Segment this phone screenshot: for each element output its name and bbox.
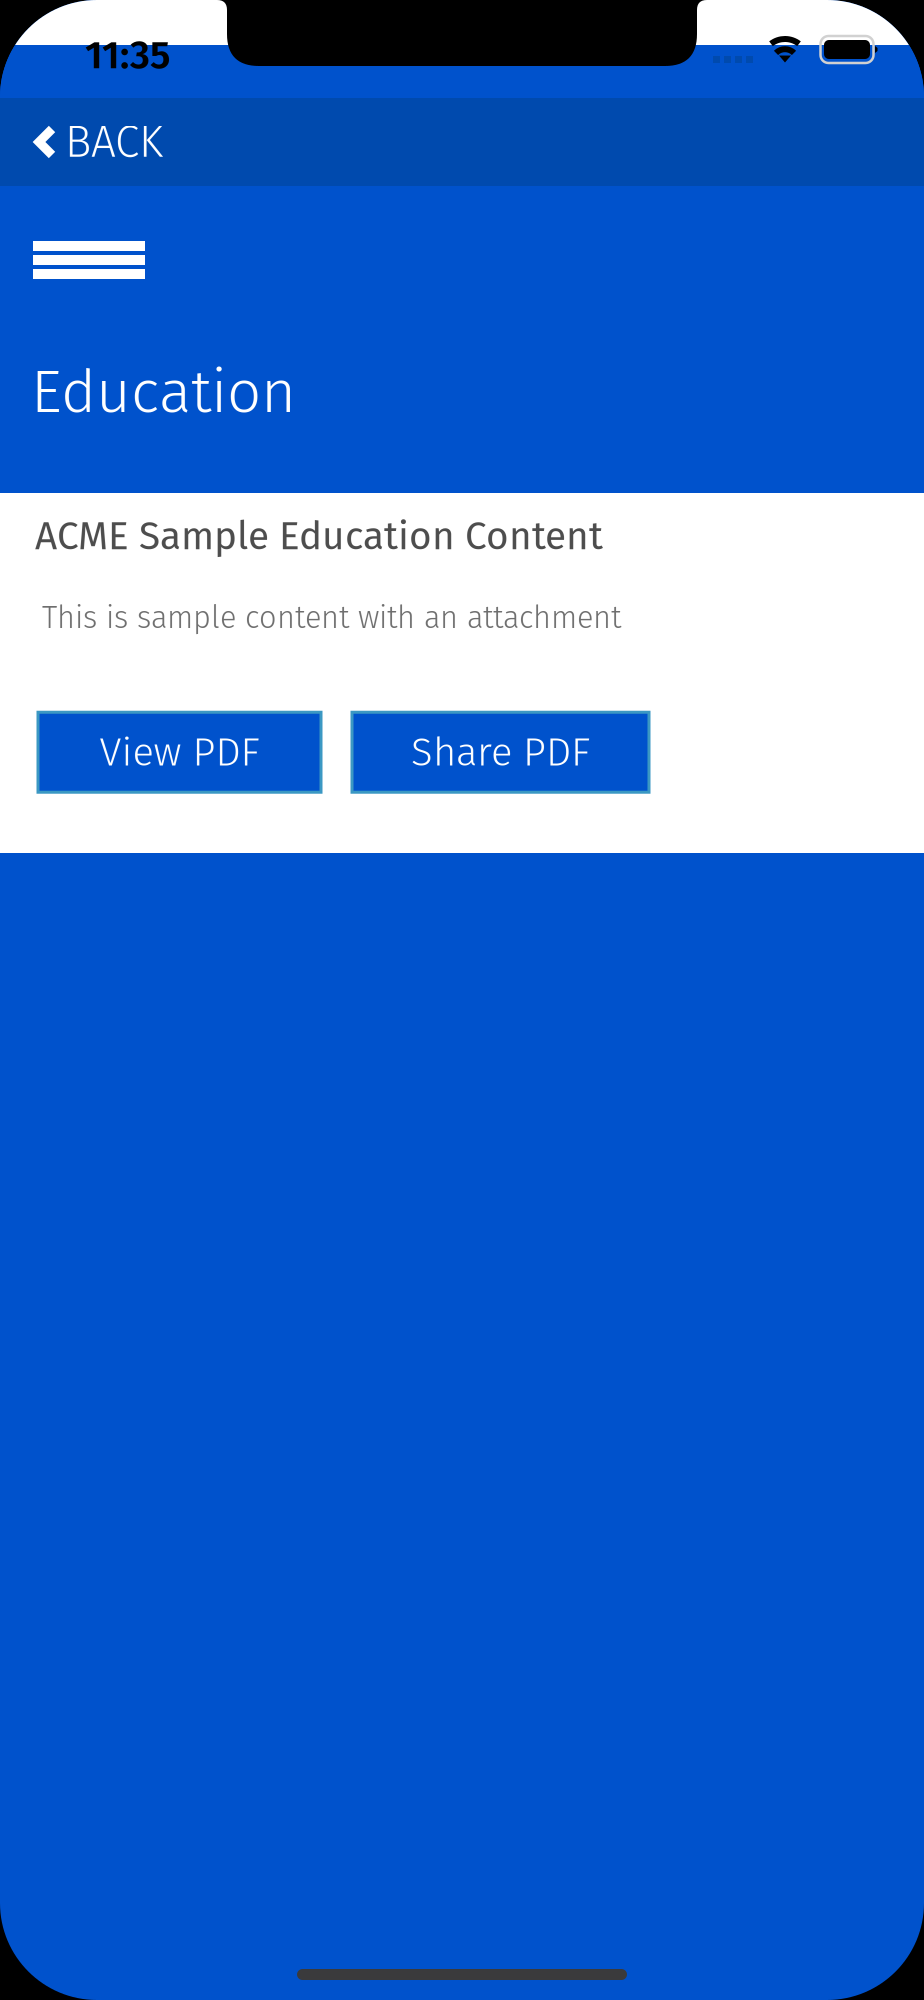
staticText: Share PDF <box>411 728 590 776</box>
button[interactable]: BACK <box>0 98 924 186</box>
button[interactable]: View PDF <box>38 712 321 792</box>
staticText: Education <box>31 356 296 428</box>
staticText: View PDF <box>99 728 259 776</box>
staticText: BACK <box>65 116 163 168</box>
staticText: 11:35 <box>85 32 170 78</box>
staticText: This is sample content with an attachmen… <box>42 599 621 636</box>
button[interactable]: Menu <box>33 241 145 279</box>
button[interactable]: Share PDF <box>352 712 649 792</box>
staticText: ACME Sample Education Content <box>35 513 603 559</box>
